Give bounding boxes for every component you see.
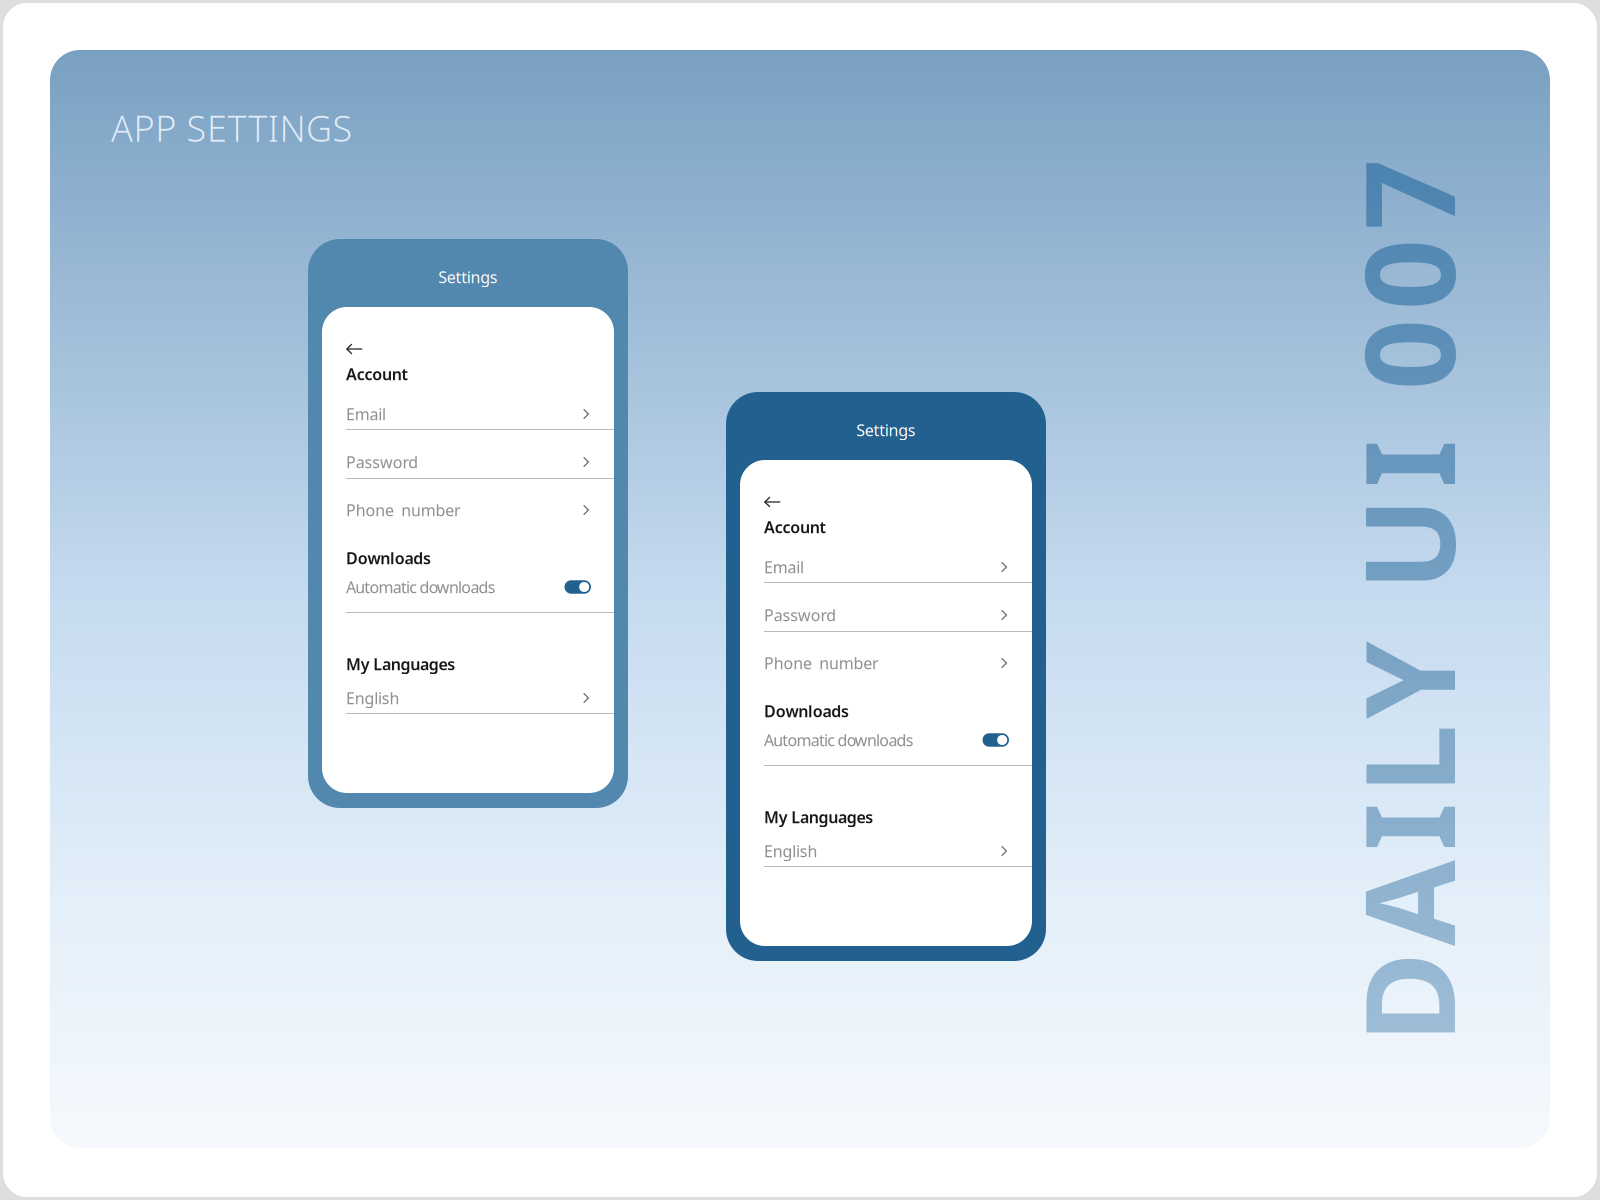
button[interactable]: Password bbox=[764, 604, 1007, 626]
staticText: Account bbox=[346, 363, 407, 385]
button[interactable]: Phone number bbox=[346, 499, 589, 521]
button[interactable]: Automatic downloads bbox=[564, 580, 591, 594]
staticText: Automatic downloads bbox=[346, 576, 496, 598]
button[interactable]: Phone number bbox=[764, 652, 1007, 674]
button[interactable]: Email bbox=[346, 403, 589, 425]
staticText: English bbox=[346, 687, 399, 709]
staticText: Automatic downloads bbox=[764, 729, 914, 751]
staticText: Downloads bbox=[346, 547, 431, 569]
staticText: Email bbox=[764, 556, 804, 578]
button[interactable]: Email bbox=[764, 556, 1007, 578]
staticText: Password bbox=[346, 451, 418, 473]
staticText: Account bbox=[764, 516, 825, 538]
button[interactable]: English bbox=[764, 840, 1007, 862]
button[interactable]: English bbox=[346, 687, 589, 709]
staticText: My Languages bbox=[764, 806, 873, 828]
button[interactable]: Automatic downloads bbox=[982, 733, 1009, 747]
staticText: My Languages bbox=[346, 653, 455, 675]
staticText: Phone number bbox=[346, 499, 461, 521]
staticText: English bbox=[764, 840, 817, 862]
staticText: APP SETTINGS bbox=[111, 104, 353, 152]
staticText: Email bbox=[346, 403, 386, 425]
staticText: Downloads bbox=[764, 700, 849, 722]
button[interactable]: Back bbox=[346, 338, 376, 360]
staticText: Settings bbox=[438, 266, 498, 288]
staticText: Settings bbox=[856, 419, 916, 441]
staticText: Phone number bbox=[764, 652, 879, 674]
staticText: Password bbox=[764, 604, 836, 626]
button[interactable]: Password bbox=[346, 451, 589, 473]
button[interactable]: Back bbox=[764, 491, 794, 513]
